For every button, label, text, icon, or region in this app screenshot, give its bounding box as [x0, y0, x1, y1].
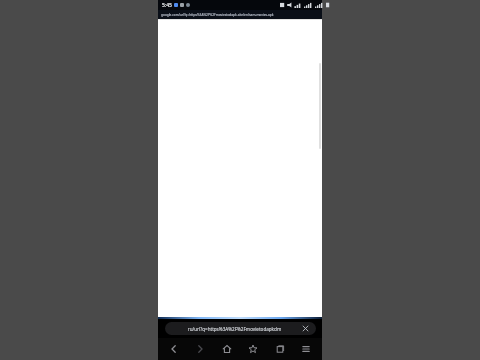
button[interactable]: Menu — [295, 338, 317, 360]
staticText: 5:45 — [162, 2, 172, 9]
button[interactable]: Home — [216, 338, 238, 360]
staticText: google.com/url?q=https%3A%2F%2Fmoviestod… — [161, 13, 274, 17]
button[interactable]: Bookmark — [242, 338, 264, 360]
button[interactable]: Tabs — [269, 338, 291, 360]
button[interactable]: ru/url?q=https%3A%2F%2Fmovietodapkdm — [165, 322, 316, 335]
button[interactable]: Forward — [189, 338, 211, 360]
button[interactable]: Back — [163, 338, 185, 360]
staticText: ru/url?q=https%3A%2F%2Fmovietodapkdm — [171, 326, 298, 332]
button[interactable]: Close suggestion — [301, 324, 310, 333]
button[interactable]: google.com/url?q=https%3A%2F%2Fmoviestod… — [158, 10, 322, 19]
